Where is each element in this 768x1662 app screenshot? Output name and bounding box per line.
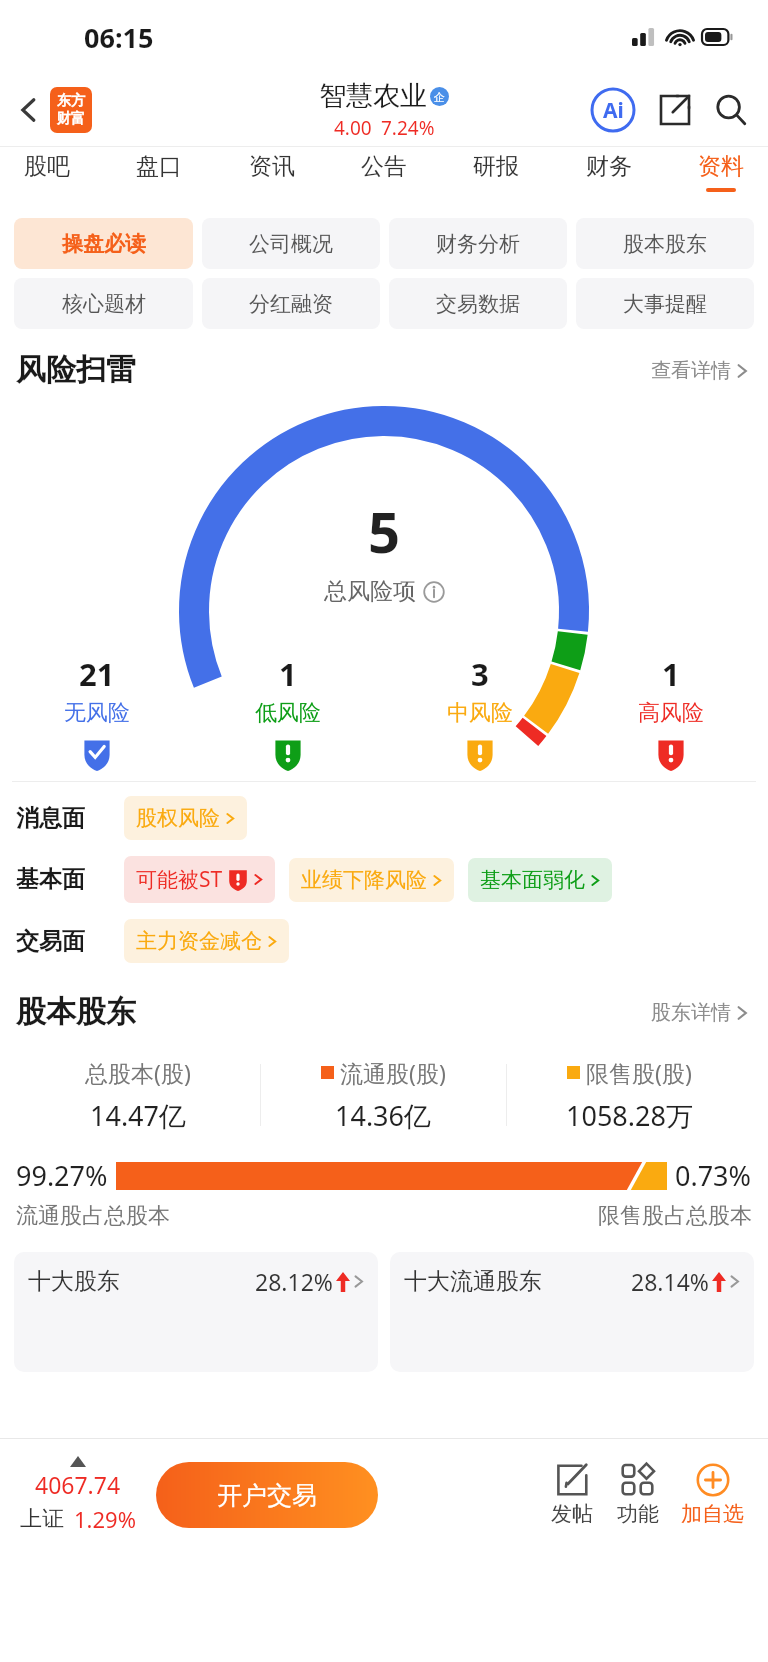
staticText: 无风险 <box>64 699 130 727</box>
staticText: 公告 <box>361 152 407 181</box>
staticText: 加自选 <box>681 1501 744 1527</box>
staticText: 总股本(股) <box>85 1057 191 1088</box>
staticText: 低风险 <box>255 699 321 727</box>
button[interactable]: 加自选 <box>671 1463 754 1527</box>
staticText: 查看详情 <box>651 358 731 383</box>
staticText: 大事提醒 <box>623 291 707 317</box>
staticText: 1.29% <box>74 1504 136 1534</box>
staticText: 股本股东 <box>623 231 707 257</box>
staticText: 资料 <box>698 152 744 181</box>
button[interactable]: 可能被ST <box>124 856 275 903</box>
button[interactable]: 资讯 <box>239 146 305 198</box>
button[interactable]: 3 <box>439 653 521 771</box>
staticText: 高风险 <box>638 699 704 727</box>
button[interactable]: 公司概况 <box>202 218 380 269</box>
staticText: 股权风险 <box>136 805 220 831</box>
staticText: 21 <box>79 653 115 695</box>
staticText: 操盘必读 <box>62 231 146 257</box>
staticText: 中风险 <box>447 699 513 727</box>
staticText: 1058.28万 <box>566 1097 693 1134</box>
button[interactable]: Share <box>654 89 696 131</box>
button[interactable]: Back <box>12 87 98 133</box>
button[interactable]: 股东详情 <box>647 996 752 1029</box>
staticText: 5 <box>368 493 401 569</box>
staticText: 上证 <box>20 1505 64 1533</box>
button[interactable]: 十大流通股东 <box>390 1252 754 1372</box>
staticText: 智慧农业 <box>319 79 427 113</box>
staticText: 核心题材 <box>62 291 146 317</box>
staticText: 资讯 <box>249 152 295 181</box>
staticText: 财务分析 <box>436 231 520 257</box>
button[interactable]: 资料 <box>688 146 754 198</box>
button[interactable]: AI assistant <box>590 87 636 133</box>
button[interactable]: 股吧 <box>14 146 80 198</box>
button[interactable]: 股本股东 <box>576 218 754 269</box>
staticText: 3 <box>471 653 489 695</box>
staticText: 企 <box>434 90 445 104</box>
button[interactable]: 股权风险 <box>124 796 247 840</box>
button[interactable]: 研报 <box>463 146 529 198</box>
staticText: 股本股东 <box>16 993 136 1031</box>
staticText: 风险扫雷 <box>16 351 136 389</box>
staticText: 基本面 <box>16 865 124 894</box>
button[interactable]: 交易数据 <box>389 278 567 329</box>
button[interactable]: 发帖 <box>539 1463 605 1527</box>
staticText: 财富 <box>57 110 85 128</box>
button[interactable]: 分红融资 <box>202 278 380 329</box>
button[interactable]: 4067.74 <box>14 1456 142 1534</box>
button[interactable]: 1 <box>630 653 712 771</box>
staticText: 开户交易 <box>217 1480 317 1511</box>
staticText: 28.14% <box>631 1266 709 1297</box>
staticText: 交易数据 <box>436 291 520 317</box>
button[interactable]: 盘口 <box>126 146 192 198</box>
staticText: 7.24% <box>381 115 435 141</box>
staticText: 十大股东 <box>28 1267 120 1296</box>
staticText: 功能 <box>617 1501 659 1527</box>
staticText: 盘口 <box>136 152 182 181</box>
staticText: 主力资金减仓 <box>136 928 262 954</box>
button[interactable]: 操盘必读 <box>14 218 193 269</box>
staticText: 限售股(股) <box>586 1057 692 1088</box>
button[interactable]: 主力资金减仓 <box>124 919 289 963</box>
staticText: 研报 <box>473 152 519 181</box>
staticText: 股吧 <box>24 152 70 181</box>
staticText: 99.27% <box>16 1157 108 1194</box>
staticText: 十大流通股东 <box>404 1267 542 1296</box>
button[interactable]: 十大股东 <box>14 1252 378 1372</box>
button[interactable]: 财务分析 <box>389 218 567 269</box>
button[interactable]: 开户交易 <box>156 1462 378 1528</box>
button[interactable]: 核心题材 <box>14 278 193 329</box>
button[interactable]: 功能 <box>605 1463 671 1527</box>
staticText: 基本面弱化 <box>480 867 585 893</box>
button[interactable]: 1 <box>247 653 329 771</box>
staticText: 业绩下降风险 <box>301 867 427 893</box>
button[interactable]: 大事提醒 <box>576 278 754 329</box>
staticText: 4067.74 <box>35 1469 121 1500</box>
staticText: 14.36亿 <box>335 1097 432 1134</box>
button[interactable]: Search <box>710 89 752 131</box>
button[interactable]: 业绩下降风险 <box>289 858 454 902</box>
staticText: 可能被ST <box>136 865 223 894</box>
staticText: 股东详情 <box>651 1000 731 1025</box>
staticText: 公司概况 <box>249 231 333 257</box>
staticText: 1 <box>662 653 680 695</box>
staticText: 06:15 <box>84 19 154 56</box>
staticText: 4.00 <box>334 115 372 141</box>
staticText: 财务 <box>586 152 632 181</box>
staticText: 限售股占总股本 <box>598 1202 752 1230</box>
staticText: 1 <box>279 653 297 695</box>
button[interactable]: 公告 <box>351 146 417 198</box>
staticText: 28.12% <box>255 1266 333 1297</box>
staticText: 发帖 <box>551 1501 593 1527</box>
button[interactable]: 基本面弱化 <box>468 858 612 902</box>
staticText: Ai <box>603 96 624 125</box>
staticText: 总风险项 <box>324 577 416 606</box>
staticText: 14.47亿 <box>90 1097 187 1134</box>
staticText: 0.73% <box>675 1157 752 1194</box>
staticText: 消息面 <box>16 804 124 833</box>
button[interactable]: 查看详情 <box>647 354 752 387</box>
staticText: 流通股占总股本 <box>16 1202 170 1230</box>
button[interactable]: 财务 <box>576 146 642 198</box>
button[interactable]: 21 <box>56 653 138 771</box>
staticText: 分红融资 <box>249 291 333 317</box>
